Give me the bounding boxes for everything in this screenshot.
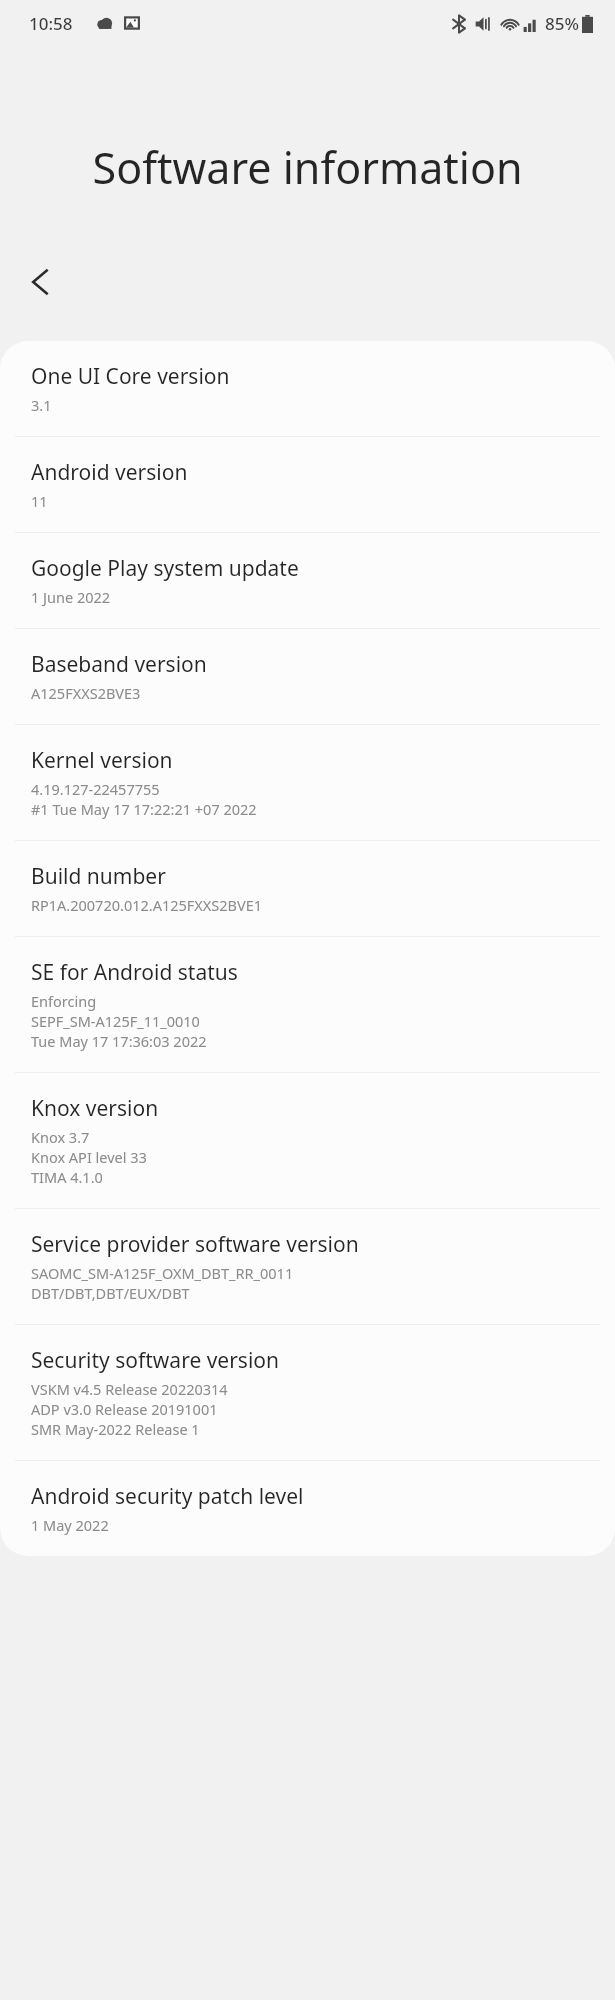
staticText: 11 xyxy=(31,491,48,511)
button[interactable]: Android version xyxy=(0,437,615,532)
button[interactable]: Security software version xyxy=(0,1325,615,1460)
staticText: Google Play system update xyxy=(31,554,299,583)
button[interactable]: Build number xyxy=(0,841,615,936)
button[interactable]: Android security patch level xyxy=(0,1461,615,1556)
staticText: Security software version xyxy=(31,1346,280,1375)
button[interactable]: Service provider software version xyxy=(0,1209,615,1324)
staticText: Android security patch level xyxy=(31,1482,304,1511)
staticText: 85% xyxy=(545,12,579,35)
staticText: SE for Android status xyxy=(31,958,238,987)
staticText: Service provider software version xyxy=(31,1230,359,1259)
staticText: RP1A.200720.012.A125FXXS2BVE1 xyxy=(31,895,263,915)
staticText: #1 Tue May 17 17:22:21 +07 2022 xyxy=(31,799,257,819)
button[interactable]: One UI Core version xyxy=(0,341,615,436)
staticText: DBT/DBT,DBT/EUX/DBT xyxy=(31,1283,190,1303)
staticText: TIMA 4.1.0 xyxy=(31,1167,103,1187)
staticText: Tue May 17 17:36:03 2022 xyxy=(31,1031,207,1051)
staticText: Android version xyxy=(31,458,188,487)
staticText: SEPF_SM-A125F_11_0010 xyxy=(31,1011,200,1031)
staticText: One UI Core version xyxy=(31,362,230,391)
button[interactable]: Baseband version xyxy=(0,629,615,724)
staticText: A125FXXS2BVE3 xyxy=(31,683,141,703)
staticText: SAOMC_SM-A125F_OXM_DBT_RR_0011 xyxy=(31,1263,294,1283)
staticText: 3.1 xyxy=(31,395,52,415)
staticText: 10:58 xyxy=(29,12,73,35)
staticText: ADP v3.0 Release 20191001 xyxy=(31,1399,218,1419)
staticText: Software information xyxy=(46,138,569,197)
staticText: 1 May 2022 xyxy=(31,1515,109,1535)
button[interactable]: Google Play system update xyxy=(0,533,615,628)
button[interactable]: SE for Android status xyxy=(0,937,615,1072)
staticText: VSKM v4.5 Release 20220314 xyxy=(31,1379,228,1399)
staticText: SMR May-2022 Release 1 xyxy=(31,1419,200,1439)
staticText: Knox 3.7 xyxy=(31,1127,90,1147)
staticText: 4.19.127-22457755 xyxy=(31,779,160,799)
staticText: Enforcing xyxy=(31,991,97,1011)
staticText: Kernel version xyxy=(31,746,173,775)
staticText: Build number xyxy=(31,862,166,891)
staticText: Knox API level 33 xyxy=(31,1147,147,1167)
button[interactable]: Back xyxy=(8,249,74,315)
button[interactable]: Knox version xyxy=(0,1073,615,1208)
staticText: Knox version xyxy=(31,1094,159,1123)
button[interactable]: Kernel version xyxy=(0,725,615,840)
staticText: 1 June 2022 xyxy=(31,587,111,607)
staticText: Baseband version xyxy=(31,650,207,679)
